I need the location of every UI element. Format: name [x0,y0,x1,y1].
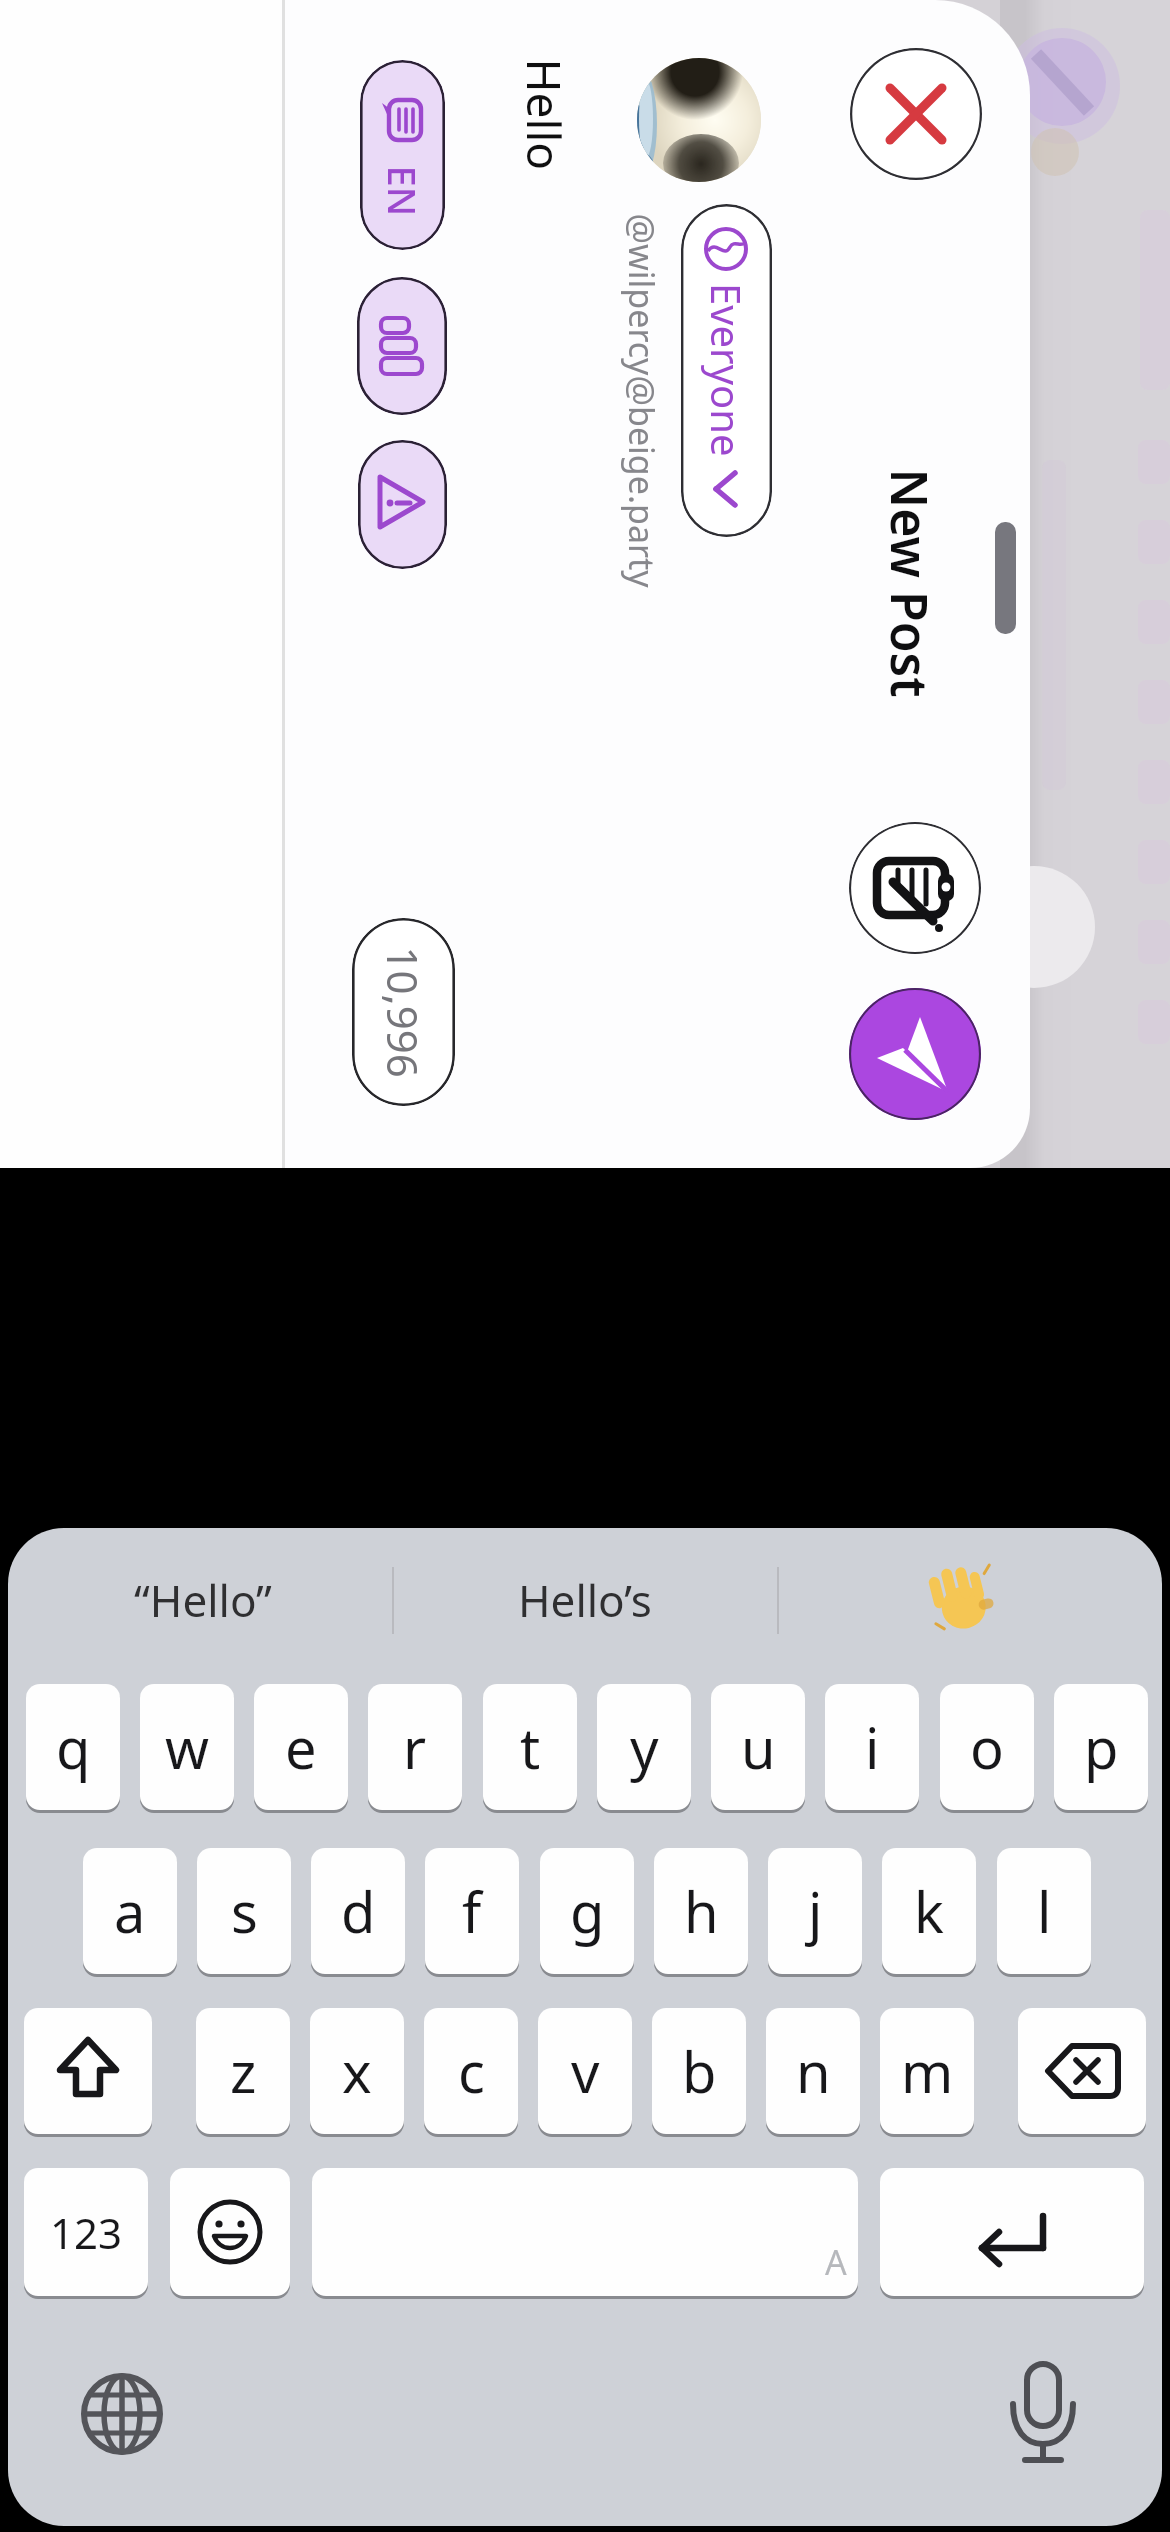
button[interactable]: h [654,1848,748,1974]
staticText: m [901,2033,954,2109]
staticText: i [865,1709,880,1785]
button[interactable]: y [597,1684,691,1810]
staticText: u [741,1709,776,1785]
staticText: Hello’s [518,1570,652,1630]
button[interactable]: a [83,1848,177,1974]
staticText: v [571,2033,600,2109]
staticText: t [520,1709,541,1785]
staticText: “Hello” [134,1570,272,1630]
staticText: 123 [50,2204,123,2261]
staticText: y [630,1709,659,1785]
button[interactable]: 123 [24,2168,148,2296]
staticText: e [285,1709,317,1785]
staticText: p [1084,1709,1119,1785]
button[interactable]: e [254,1684,348,1810]
staticText: d [341,1873,376,1949]
button[interactable] [681,204,772,537]
staticText: r [403,1709,427,1785]
staticText: f [462,1873,482,1949]
staticText: l [1037,1873,1052,1949]
staticText: n [796,2033,831,2109]
button[interactable] [74,2366,170,2462]
button[interactable]: c [424,2008,518,2134]
staticText: x [342,2033,372,2109]
button[interactable]: v [538,2008,632,2134]
staticText: Everyone [700,283,754,457]
staticText: New Post [875,468,943,697]
button[interactable]: r [368,1684,462,1810]
staticText: o [970,1709,1004,1785]
staticText: z [230,2033,257,2109]
button[interactable]: i [825,1684,919,1810]
button[interactable] [880,2168,1144,2296]
button[interactable]: f [425,1848,519,1974]
button[interactable]: j [768,1848,862,1974]
button[interactable]: w [140,1684,234,1810]
button[interactable]: p [1054,1684,1148,1810]
button[interactable]: o [940,1684,1034,1810]
button[interactable] [1018,2008,1146,2134]
button[interactable] [24,2008,152,2134]
button[interactable]: k [882,1848,976,1974]
button[interactable] [357,277,447,415]
button[interactable] [358,440,447,569]
button[interactable]: t [483,1684,577,1810]
staticText: q [56,1709,91,1785]
button[interactable] [360,60,445,250]
button[interactable]: n [766,2008,860,2134]
staticText: k [914,1873,944,1949]
staticText: j [808,1873,823,1949]
button[interactable]: q [26,1684,120,1810]
button[interactable] [849,988,981,1120]
button[interactable]: m [880,2008,974,2134]
button[interactable] [312,2168,858,2296]
staticText: g [570,1873,605,1949]
staticText: a [114,1873,146,1949]
button[interactable]: d [311,1848,405,1974]
staticText: 10,996 [374,946,431,1078]
button[interactable]: g [540,1848,634,1974]
staticText: w [165,1709,210,1785]
button[interactable]: x [310,2008,404,2134]
staticText: s [231,1873,258,1949]
staticText: EN [376,165,428,216]
button[interactable]: u [711,1684,805,1810]
button[interactable]: l [997,1848,1091,1974]
button[interactable] [170,2168,290,2296]
button[interactable] [995,2352,1091,2472]
staticText: h [684,1873,719,1949]
staticText: c [458,2033,485,2109]
staticText: b [682,2033,717,2109]
button[interactable]: s [197,1848,291,1974]
button[interactable]: z [196,2008,290,2134]
staticText: @wilpercy@beige.party [618,213,664,588]
button[interactable]: b [652,2008,746,2134]
staticText: A [825,2239,847,2285]
button[interactable] [850,48,982,180]
button[interactable] [849,822,981,954]
staticText: Hello [512,58,575,170]
